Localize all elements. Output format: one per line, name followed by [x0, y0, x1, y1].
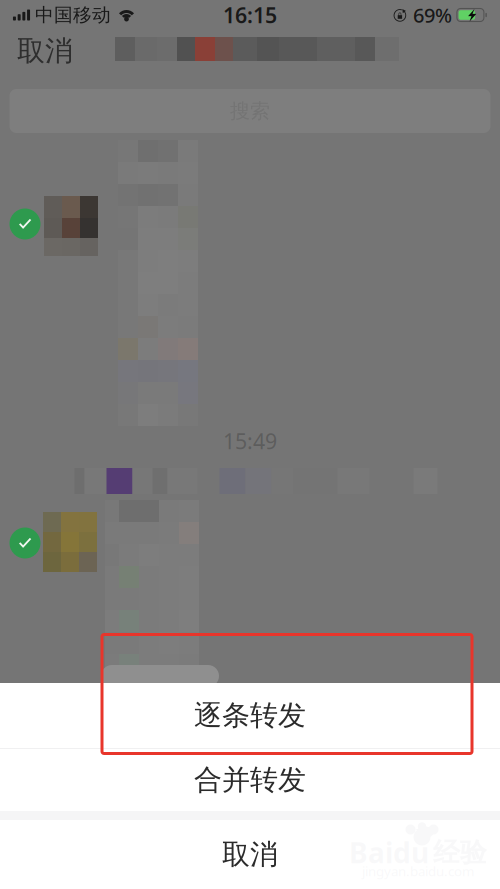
staticText: 中国移动	[35, 3, 111, 26]
staticText: 16:15	[223, 1, 277, 29]
staticText: 合并转发	[194, 763, 306, 797]
staticText: 逐条转发	[194, 698, 306, 733]
staticText: 经验	[433, 836, 487, 869]
staticText: Baidu	[349, 834, 429, 871]
staticText: 取消	[222, 837, 278, 872]
button[interactable]: 取消	[0, 820, 500, 889]
button[interactable]: 取消	[5, 30, 85, 72]
staticText: 15:49	[223, 427, 277, 455]
button[interactable]: 合并转发	[0, 749, 500, 811]
button[interactable]: 逐条转发	[0, 683, 500, 748]
staticText: 搜索	[230, 99, 270, 123]
staticText: 69%	[413, 2, 452, 28]
staticText: 取消	[17, 34, 73, 68]
